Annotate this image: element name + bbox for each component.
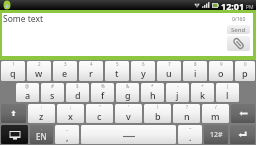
staticText: 6 <box>142 61 145 67</box>
button[interactable]: / <box>202 104 229 123</box>
staticText: p <box>242 67 248 79</box>
staticText: j <box>176 89 179 101</box>
staticText: PM <box>246 4 254 11</box>
button[interactable]: Send <box>227 25 250 34</box>
staticText: 4 <box>90 61 93 67</box>
staticText: g <box>125 89 131 101</box>
staticText: * <box>151 83 154 89</box>
staticText: b <box>155 110 161 122</box>
staticText: % <box>101 83 105 89</box>
staticText: k <box>200 89 206 101</box>
button[interactable]: 12# <box>204 125 228 144</box>
button[interactable]: Keyboard settings <box>1 125 28 144</box>
button[interactable]: ! <box>144 104 171 123</box>
staticText: , <box>66 131 69 143</box>
staticText: 8 <box>194 61 197 67</box>
button[interactable]: 3 <box>53 61 77 81</box>
staticText: + <box>201 83 204 89</box>
button[interactable]: : <box>28 104 55 123</box>
staticText: ~ <box>189 125 192 131</box>
button[interactable]: 4 <box>79 61 103 81</box>
staticText: ; <box>70 104 72 110</box>
button[interactable]: % <box>91 83 114 102</box>
button[interactable]: - <box>166 83 189 102</box>
staticText: h <box>150 89 156 101</box>
staticText: q <box>10 67 16 79</box>
button[interactable]: 1 <box>1 61 25 81</box>
button[interactable]: 8 <box>183 61 207 81</box>
button[interactable]: " <box>86 104 113 123</box>
staticText: : <box>41 104 43 110</box>
staticText: 12:01 <box>221 0 245 10</box>
staticText: # <box>51 83 54 89</box>
staticText: z <box>39 110 44 122</box>
button[interactable]: Backspace <box>231 104 255 123</box>
staticText: 2 <box>38 61 41 67</box>
staticText: a <box>25 89 31 101</box>
staticText: u <box>166 67 172 79</box>
staticText: i <box>194 67 197 79</box>
button[interactable]: 0 <box>235 61 255 81</box>
staticText: s <box>50 89 55 101</box>
staticText: Some text <box>3 13 44 25</box>
button[interactable]: @ <box>16 83 39 102</box>
staticText: 5 <box>116 61 119 67</box>
staticText: . <box>41 125 43 132</box>
button[interactable]: 9 <box>209 61 233 81</box>
button[interactable]: * <box>141 83 164 102</box>
staticText: _ <box>66 125 68 131</box>
staticText: v <box>126 110 131 122</box>
button[interactable]: _ <box>55 125 79 144</box>
button[interactable]: ; <box>57 104 84 123</box>
staticText: o <box>218 67 224 79</box>
button[interactable]: ? <box>173 104 200 123</box>
staticText: ! <box>157 104 159 110</box>
button[interactable]: ~ <box>178 125 202 144</box>
staticText: y <box>141 67 146 79</box>
staticText: $ <box>76 83 79 89</box>
button[interactable]: + <box>191 83 214 102</box>
staticText: c <box>97 110 102 122</box>
staticText: EN <box>36 131 47 142</box>
button[interactable]: Enter <box>230 125 255 144</box>
button[interactable]: 7 <box>157 61 181 81</box>
staticText: w <box>35 67 43 79</box>
button[interactable]: ' <box>115 104 142 123</box>
staticText: ? <box>186 104 188 110</box>
staticText: . <box>189 131 192 143</box>
button[interactable]: & <box>116 83 139 102</box>
staticText: & <box>126 83 130 89</box>
staticText: / <box>215 104 217 110</box>
staticText: 3 <box>64 61 67 67</box>
staticText: - <box>177 83 179 89</box>
button[interactable]: 5 <box>105 61 129 81</box>
button[interactable]: ( <box>216 83 239 102</box>
button[interactable]: . <box>30 125 53 144</box>
button[interactable]: # <box>41 83 64 102</box>
staticText: l <box>226 89 229 101</box>
button[interactable]: Shift <box>1 104 26 123</box>
staticText: d <box>75 89 81 101</box>
staticText: f <box>101 89 105 101</box>
button[interactable]: 2 <box>27 61 51 81</box>
button[interactable]: 6 <box>131 61 155 81</box>
staticText: t <box>115 67 119 79</box>
staticText: 0/160 <box>232 16 246 23</box>
staticText: r <box>89 67 93 79</box>
staticText: ' <box>128 104 130 110</box>
button[interactable]: $ <box>66 83 89 102</box>
staticText: ( <box>227 83 229 89</box>
staticText: 12# <box>210 130 223 140</box>
staticText: Send <box>231 26 246 34</box>
staticText: 9 <box>220 61 223 67</box>
staticText: 1 <box>12 61 15 67</box>
staticText: e <box>62 67 68 79</box>
button[interactable]: Attach <box>227 36 250 51</box>
staticText: " <box>99 104 101 110</box>
staticText: m <box>211 110 220 122</box>
staticText: @ <box>25 83 30 89</box>
staticText: x <box>68 110 73 122</box>
staticText: 0 <box>244 61 247 67</box>
staticText: 7 <box>168 61 171 67</box>
button[interactable]: Space <box>81 125 176 144</box>
